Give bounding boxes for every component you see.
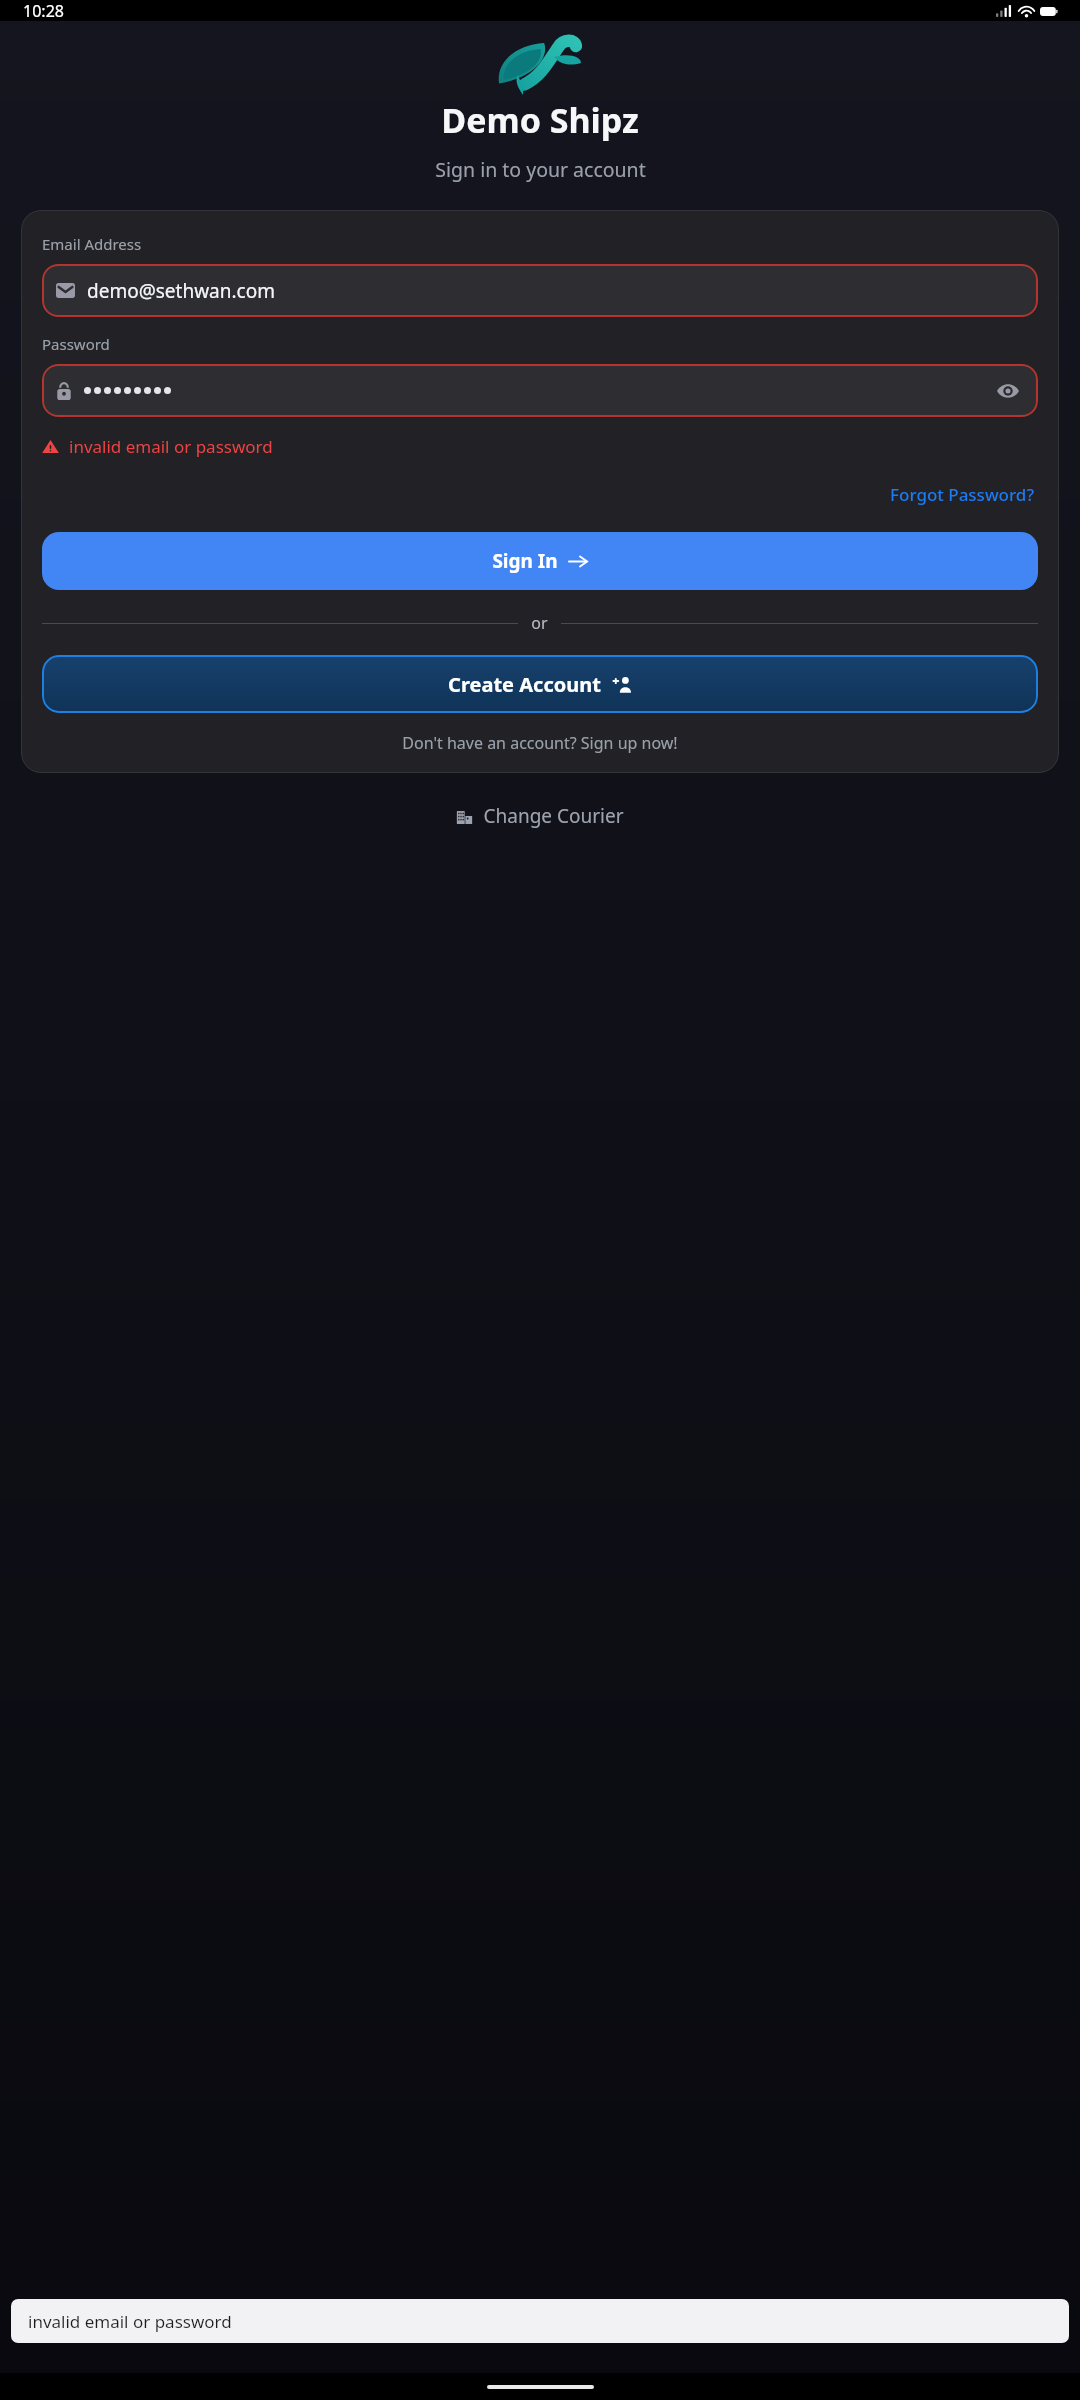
button[interactable]: demo@sethwan.com — [42, 264, 1038, 317]
staticText: or — [531, 612, 548, 634]
button[interactable]: Forgot Password? — [886, 479, 1038, 510]
staticText: Don't have an account? Sign up now! — [42, 732, 1038, 754]
staticText: invalid email or password — [69, 435, 273, 458]
staticText: invalid email or password — [28, 2310, 232, 2333]
staticText: Create Account — [448, 671, 601, 698]
staticText: Demo Shipz — [441, 97, 639, 143]
staticText: Password — [42, 334, 110, 354]
button[interactable]: Create Account — [42, 655, 1038, 713]
staticText: 10:28 — [23, 0, 64, 21]
button[interactable]: Show password — [42, 364, 1038, 417]
staticText: Sign In — [492, 548, 558, 574]
button[interactable]: Change Courier — [444, 797, 636, 835]
button[interactable]: Show password — [992, 375, 1024, 407]
staticText: Email Address — [42, 234, 142, 254]
button[interactable]: Sign In — [42, 532, 1038, 590]
staticText: demo@sethwan.com — [87, 278, 1024, 304]
staticText: Sign in to your account — [435, 156, 646, 183]
staticText: Change Courier — [483, 803, 624, 829]
